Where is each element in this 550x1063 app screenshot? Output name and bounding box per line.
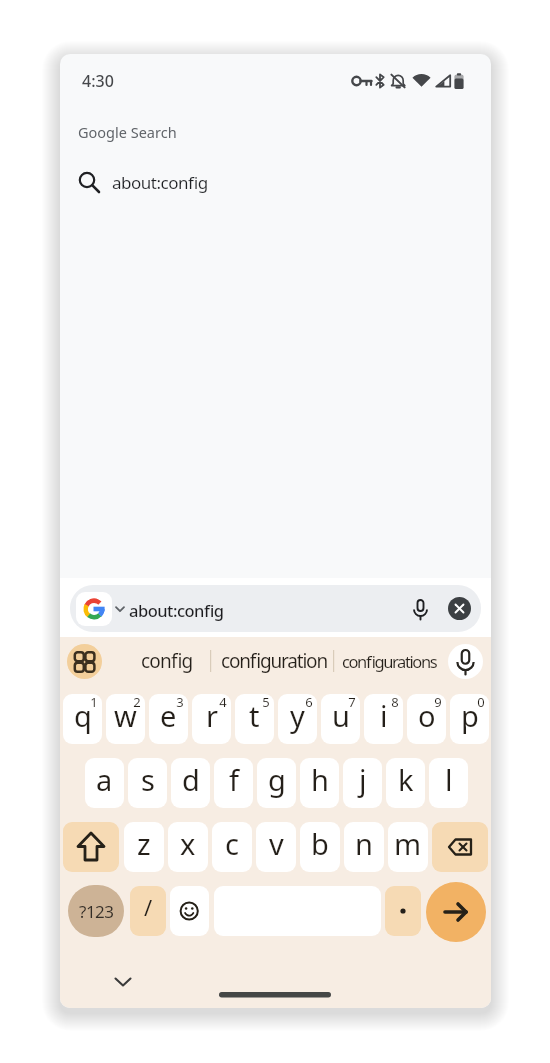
button[interactable]: t xyxy=(235,694,274,744)
staticText: p xyxy=(461,696,479,735)
staticText: 3 xyxy=(176,693,184,711)
button[interactable]: r xyxy=(192,694,231,744)
button[interactable]: a xyxy=(85,758,124,808)
staticText: about:config xyxy=(129,599,224,621)
staticText: s xyxy=(141,760,155,799)
button[interactable]: w xyxy=(106,694,145,744)
staticText: 1 xyxy=(90,693,98,711)
staticText: 4 xyxy=(219,693,227,711)
staticText: 5 xyxy=(262,693,270,711)
staticText: j xyxy=(359,760,367,799)
staticText: z xyxy=(137,824,151,863)
button[interactable]: l xyxy=(429,758,468,808)
button[interactable] xyxy=(170,886,209,936)
button[interactable]: o xyxy=(407,694,446,744)
staticText: 0 xyxy=(477,693,485,711)
button[interactable]: v xyxy=(256,822,296,872)
button[interactable]: ?123 xyxy=(68,885,124,937)
staticText: 2 xyxy=(133,693,141,711)
button[interactable]: f xyxy=(214,758,253,808)
button[interactable]: g xyxy=(257,758,296,808)
staticText: i xyxy=(380,696,388,735)
staticText: ?123 xyxy=(79,900,114,923)
button[interactable]: b xyxy=(300,822,340,872)
staticText: y xyxy=(290,696,305,735)
button[interactable] xyxy=(70,585,481,632)
staticText: m xyxy=(394,824,422,863)
staticText: 4:30 xyxy=(82,70,114,92)
staticText: g xyxy=(268,760,286,799)
staticText: k xyxy=(398,760,414,799)
staticText: f xyxy=(229,760,239,799)
button[interactable]: h xyxy=(300,758,339,808)
staticText: 9 xyxy=(434,693,442,711)
staticText: w xyxy=(114,696,137,735)
button[interactable]: c xyxy=(212,822,252,872)
staticText: x xyxy=(180,824,196,863)
staticText: a xyxy=(96,760,113,799)
button[interactable] xyxy=(448,644,483,679)
button[interactable]: z xyxy=(124,822,164,872)
button[interactable]: p xyxy=(450,694,489,744)
staticText: r xyxy=(206,696,218,735)
button[interactable]: i xyxy=(364,694,403,744)
button[interactable]: k xyxy=(386,758,425,808)
button[interactable] xyxy=(63,822,119,872)
button[interactable]: e xyxy=(149,694,188,744)
button[interactable] xyxy=(67,644,102,679)
staticText: / xyxy=(144,892,153,922)
staticText: q xyxy=(74,696,92,735)
button[interactable] xyxy=(426,882,486,942)
staticText: h xyxy=(311,760,329,799)
button[interactable]: u xyxy=(321,694,360,744)
button[interactable] xyxy=(448,597,471,620)
staticText: e xyxy=(160,696,177,735)
staticText: l xyxy=(445,760,453,799)
staticText: Google Search xyxy=(78,122,177,142)
staticText: c xyxy=(225,824,239,863)
staticText: n xyxy=(355,824,373,863)
staticText: d xyxy=(182,760,200,799)
staticText: configuration xyxy=(221,648,327,674)
button[interactable]: configurations xyxy=(332,643,447,679)
staticText: o xyxy=(418,696,436,735)
button[interactable]: x xyxy=(168,822,208,872)
button[interactable]: m xyxy=(388,822,428,872)
button[interactable]: d xyxy=(171,758,210,808)
button[interactable] xyxy=(385,886,421,936)
staticText: config xyxy=(141,648,193,674)
button[interactable]: y xyxy=(278,694,317,744)
button[interactable]: / xyxy=(130,886,166,936)
staticText: about:config xyxy=(112,171,208,194)
button[interactable]: q xyxy=(63,694,102,744)
staticText: 8 xyxy=(391,693,399,711)
button[interactable] xyxy=(432,822,488,872)
button[interactable]: n xyxy=(344,822,384,872)
staticText: u xyxy=(332,696,350,735)
button[interactable]: configuration xyxy=(209,643,339,679)
button[interactable]: j xyxy=(343,758,382,808)
staticText: v xyxy=(269,824,284,863)
staticText: 7 xyxy=(348,693,356,711)
button[interactable]: s xyxy=(128,758,167,808)
staticText: 6 xyxy=(305,693,313,711)
staticText: configurations xyxy=(342,650,437,672)
staticText: t xyxy=(249,696,260,735)
button[interactable] xyxy=(76,592,112,626)
staticText: b xyxy=(311,824,329,863)
button[interactable]: config xyxy=(122,643,212,679)
